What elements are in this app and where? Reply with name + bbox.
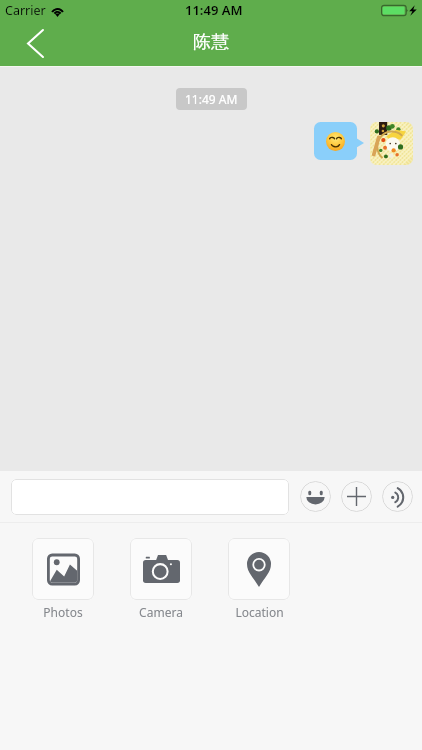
button[interactable]: Back [0,20,70,66]
button[interactable]: Add attachment [341,481,372,512]
button[interactable]: Contact avatar [370,122,413,165]
staticText: 11:49 AM [185,1,243,19]
staticText: Photos [43,604,83,620]
button[interactable]: Location [228,538,290,620]
button[interactable]: Voice message [382,481,413,512]
button[interactable]: Photos [32,538,94,620]
staticText: Carrier [5,2,46,19]
button[interactable]: Emoji [300,481,331,512]
button[interactable] [11,479,289,515]
button[interactable]: Camera [130,538,192,620]
staticText: Location [235,604,284,620]
staticText: 陈慧 [193,31,229,54]
staticText: Camera [139,604,183,620]
staticText: 11:49 AM [185,91,238,107]
